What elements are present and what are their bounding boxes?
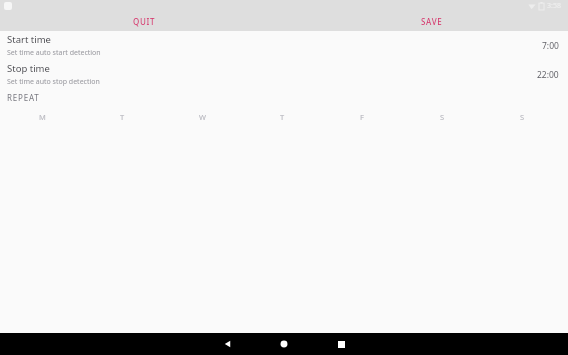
button[interactable]: Recent apps [327,333,355,355]
staticText: 3:58 [547,1,561,11]
button[interactable]: Stop time [0,60,568,89]
button[interactable]: T [242,106,322,128]
button[interactable]: M [2,106,82,128]
button[interactable]: Start time [0,31,568,60]
staticText: Start time [7,33,51,46]
button[interactable]: W [162,106,242,128]
button[interactable]: T [82,106,162,128]
staticText: W [199,112,206,122]
staticText: F [360,112,364,122]
staticText: Set time auto start detection [7,48,101,58]
button[interactable]: Home [270,333,298,355]
staticText: Stop time [7,62,50,75]
staticText: T [280,112,285,122]
staticText: REPEAT [7,92,40,103]
staticText: M [39,112,46,122]
staticText: 7:00 [542,40,559,52]
staticText: 22:00 [537,69,559,81]
button[interactable]: S [482,106,562,128]
button[interactable]: SAVE [415,13,449,30]
button[interactable]: S [402,106,482,128]
staticText: S [440,112,445,122]
staticText: S [520,112,525,122]
staticText: Set time auto stop detection [7,77,100,87]
button[interactable]: Back [214,333,242,355]
staticText: SAVE [421,16,443,27]
button[interactable]: QUIT [127,13,162,30]
button[interactable]: F [322,106,402,128]
staticText: QUIT [133,16,156,27]
staticText: T [120,112,125,122]
